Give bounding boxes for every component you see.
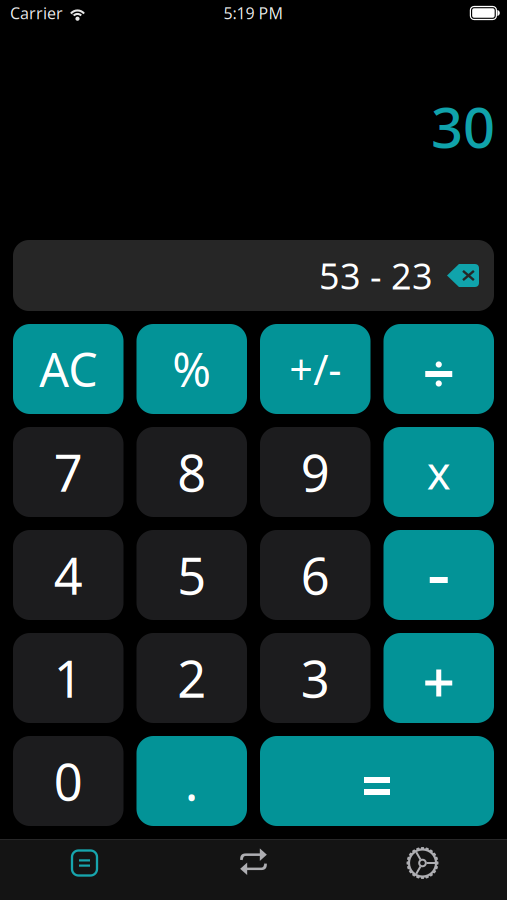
staticText: 3: [301, 644, 330, 712]
staticText: 8: [177, 438, 206, 506]
button[interactable]: 3: [260, 633, 370, 723]
button[interactable]: [383, 324, 494, 414]
button[interactable]: Settings: [338, 839, 507, 900]
button[interactable]: Delete: [447, 264, 479, 287]
button[interactable]: .: [136, 736, 247, 826]
staticText: 5:19 PM: [223, 2, 283, 24]
button[interactable]: Converter: [169, 839, 338, 900]
staticText: +/-: [289, 342, 341, 396]
staticText: 9: [301, 438, 330, 506]
staticText: x: [427, 442, 451, 502]
button[interactable]: AC: [13, 324, 123, 414]
button[interactable]: 8: [136, 427, 247, 517]
staticText: AC: [39, 338, 97, 400]
button[interactable]: 1: [13, 633, 123, 723]
staticText: 7: [54, 438, 83, 506]
button[interactable]: [383, 530, 494, 620]
button[interactable]: 2: [136, 633, 247, 723]
button[interactable]: %: [136, 324, 247, 414]
button[interactable]: 0: [13, 736, 123, 826]
button[interactable]: 5: [136, 530, 247, 620]
staticText: %: [172, 338, 211, 400]
button[interactable]: 6: [260, 530, 370, 620]
button[interactable]: [383, 633, 494, 723]
staticText: 30: [431, 89, 495, 163]
button[interactable]: 4: [13, 530, 123, 620]
button[interactable]: 7: [13, 427, 123, 517]
button[interactable]: 9: [260, 427, 370, 517]
staticText: .: [185, 747, 199, 815]
button[interactable]: x: [383, 427, 494, 517]
button[interactable]: [260, 736, 494, 826]
staticText: 1: [54, 644, 83, 712]
staticText: Carrier: [10, 2, 63, 24]
staticText: 4: [54, 541, 83, 609]
staticText: 6: [301, 541, 330, 609]
button[interactable]: +/-: [260, 324, 370, 414]
staticText: 0: [54, 747, 83, 815]
staticText: 5: [177, 541, 206, 609]
button[interactable]: Calculator: [0, 839, 169, 900]
staticText: 53 - 23: [319, 252, 433, 299]
staticText: 2: [177, 644, 206, 712]
